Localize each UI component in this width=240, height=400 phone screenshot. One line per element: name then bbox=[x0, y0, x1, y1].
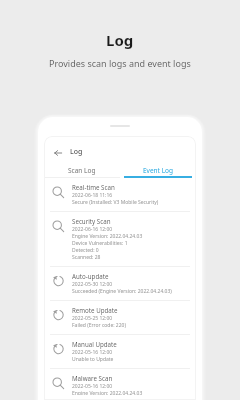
button[interactable]: Event Log bbox=[120, 162, 196, 178]
button[interactable]: Real-time Scan bbox=[44, 178, 196, 212]
staticText: Provides scan logs and event logs bbox=[49, 57, 191, 69]
staticText: Malware Scan bbox=[72, 374, 113, 382]
staticText: Event Log bbox=[143, 166, 173, 175]
staticText: Succeeded (Engine Version: 2022.04.24.03… bbox=[72, 288, 172, 295]
button[interactable]: Malware Scan bbox=[44, 369, 196, 400]
staticText: 2022-06-16 12:00 bbox=[72, 226, 113, 233]
staticText: Log bbox=[106, 30, 134, 50]
staticText: Scan Log bbox=[68, 166, 96, 175]
staticText: Failed (Error code: 220) bbox=[72, 322, 126, 329]
staticText: Scanned: 28 bbox=[72, 254, 101, 261]
button[interactable]: Security Scan bbox=[44, 212, 196, 267]
staticText: Device Vulnerabilities: 1 bbox=[72, 240, 128, 247]
button[interactable]: Scan Log bbox=[44, 162, 120, 178]
staticText: 2022-06-18 11:16 bbox=[72, 192, 113, 199]
staticText: Real-time Scan bbox=[72, 183, 115, 191]
staticText: 2022-05-16 12:00 bbox=[72, 349, 113, 356]
staticText: Log bbox=[70, 147, 83, 157]
staticText: Secure (Installed: V3 Mobile Security) bbox=[72, 199, 159, 206]
staticText: Engine Version: 2022.04.24.03 bbox=[72, 390, 143, 395]
staticText: 2022-05-30 12:00 bbox=[72, 281, 113, 288]
staticText: Manual Update bbox=[72, 340, 117, 348]
staticText: Remote Update bbox=[72, 306, 118, 314]
staticText: 2022-05-25 12:00 bbox=[72, 315, 113, 322]
staticText: 2022-05-16 12:00 bbox=[72, 383, 113, 390]
staticText: Unable to Update bbox=[72, 356, 114, 363]
button[interactable]: Manual Update bbox=[44, 335, 196, 369]
staticText: Auto-update bbox=[72, 272, 109, 280]
staticText: Detected: 0 bbox=[72, 247, 99, 254]
button[interactable]: Remote Update bbox=[44, 301, 196, 335]
button[interactable]: Auto-update bbox=[44, 267, 196, 301]
button[interactable]: Back bbox=[51, 146, 64, 159]
staticText: Engine Version: 2022.04.24.03 bbox=[72, 233, 143, 240]
staticText: Security Scan bbox=[72, 217, 111, 225]
